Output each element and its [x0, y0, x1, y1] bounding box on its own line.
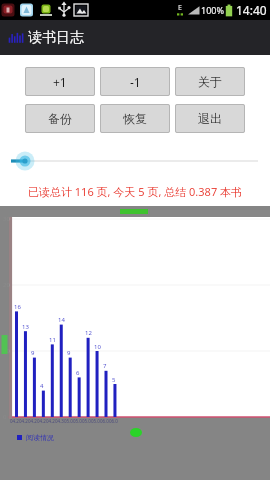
staticText: 退出 — [198, 111, 222, 126]
button[interactable]: 备份 — [25, 104, 95, 133]
staticText: 12 — [85, 329, 92, 337]
staticText: -1 — [130, 74, 141, 90]
staticText: 恢复 — [123, 111, 147, 126]
staticText: 10 — [3, 347, 10, 355]
staticText: 05.01 — [64, 418, 73, 424]
staticText: 14:40 — [236, 2, 267, 18]
staticText: 9 — [67, 349, 71, 357]
staticText: 13 — [22, 323, 29, 331]
button[interactable]: 退出 — [175, 104, 245, 133]
staticText: 7 — [103, 362, 107, 370]
staticText: 11 — [49, 336, 56, 344]
button[interactable]: 关于 — [175, 67, 245, 96]
staticText: 04.28 — [37, 418, 46, 424]
staticText: 9 — [31, 349, 35, 357]
staticText: 04.29 — [46, 418, 55, 424]
staticText: 06.05 — [100, 418, 109, 424]
staticText: 06.05 — [109, 418, 118, 424]
staticText: 100% — [201, 4, 224, 16]
staticText: 已读总计 116 页, 今天 5 页, 总结 0.387 本书 — [0, 184, 270, 199]
button[interactable]: +1 — [25, 67, 95, 96]
staticText: 05.03 — [82, 418, 91, 424]
staticText: 04.30 — [55, 418, 64, 424]
button[interactable]: -1 — [100, 67, 170, 96]
staticText: 10 — [94, 343, 101, 351]
button[interactable]: Reading progress slider — [0, 148, 270, 174]
staticText: 04.27 — [28, 418, 37, 424]
staticText: 5 — [112, 376, 116, 384]
staticText: 4 — [40, 382, 44, 390]
staticText: 6 — [76, 369, 80, 377]
staticText: E — [178, 3, 182, 13]
staticText: 16 — [14, 303, 21, 311]
staticText: 备份 — [48, 111, 72, 126]
staticText: 阅读情况 — [26, 433, 54, 442]
staticText: 04.26 — [19, 418, 28, 424]
staticText: 读书日志 — [28, 29, 84, 47]
staticText: 05.04 — [91, 418, 100, 424]
staticText: 关于 — [198, 74, 222, 89]
staticText: 20 — [3, 281, 10, 289]
staticText: +1 — [53, 74, 67, 90]
staticText: 05.02 — [73, 418, 82, 424]
staticText: 30 — [3, 215, 10, 223]
button[interactable]: 恢复 — [100, 104, 170, 133]
staticText: 04.25 — [10, 418, 19, 424]
staticText: 14 — [58, 316, 65, 324]
